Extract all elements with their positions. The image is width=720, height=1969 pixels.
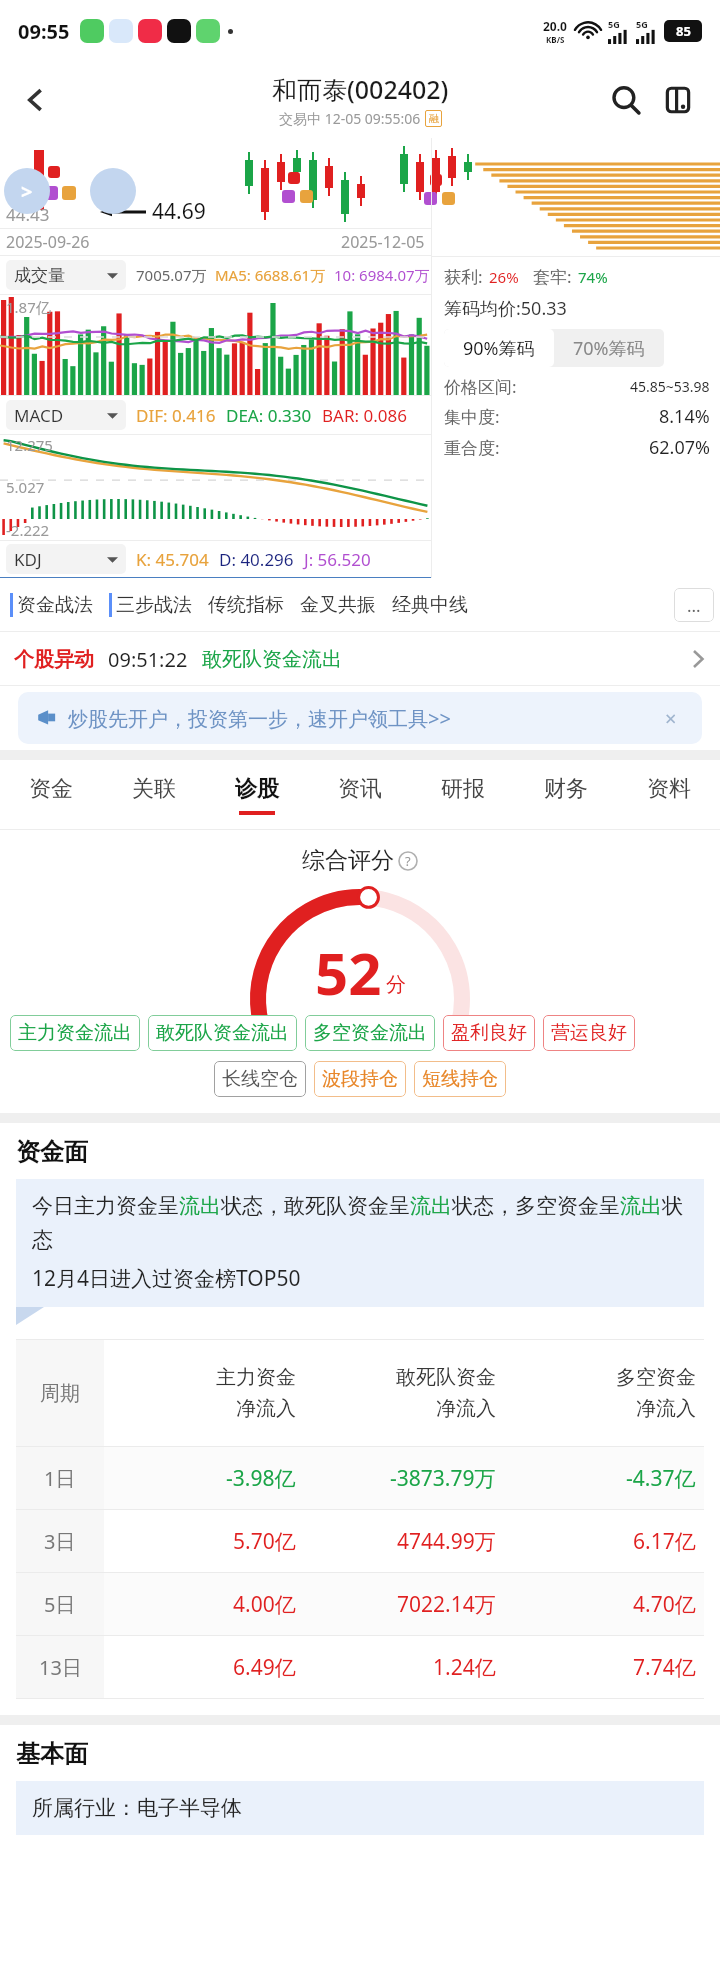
staticText: × [665, 705, 677, 731]
staticText: MA5: 6688.61万 [215, 265, 326, 285]
staticText: 5G [608, 18, 620, 30]
button[interactable]: 资料 [617, 760, 720, 830]
staticText: 20.0 [543, 18, 567, 34]
staticText: 传统指标 [208, 593, 284, 617]
staticText: ... [687, 594, 701, 617]
staticText: 44.43 [6, 203, 50, 226]
button[interactable]: 主力资金流出 [10, 1015, 140, 1051]
staticText: 和而泰(002402) [272, 72, 449, 106]
button[interactable]: Back [8, 72, 64, 128]
button[interactable]: Chart tool [90, 168, 136, 214]
button[interactable]: 关联 [102, 760, 205, 830]
staticText: 74% [578, 267, 608, 287]
staticText: 7.74亿 [633, 1653, 696, 1682]
staticText: 净流入 [236, 1396, 296, 1421]
staticText: 获利: [444, 265, 483, 288]
button[interactable]: More [652, 74, 704, 126]
staticText: 经典中线 [392, 593, 468, 617]
staticText: KDJ [14, 548, 42, 571]
button[interactable]: Next [4, 168, 50, 214]
staticText: J: 56.520 [304, 548, 371, 571]
staticText: 09:55 [18, 18, 70, 45]
staticText: 4.70亿 [633, 1590, 696, 1619]
button[interactable]: 财务 [514, 760, 617, 830]
staticText: 资讯 [338, 775, 382, 803]
staticText: 5.70亿 [233, 1527, 296, 1556]
button[interactable]: 研报 [411, 760, 514, 830]
staticText: 44.69 [152, 197, 206, 226]
staticText: 6.17亿 [633, 1527, 696, 1556]
button[interactable]: 资金 [0, 760, 102, 830]
staticText: 敢死队资金 [396, 1365, 496, 1390]
staticText: 重合度: [444, 436, 500, 459]
staticText: 诊股 [235, 775, 279, 803]
staticText: 4744.99万 [397, 1527, 496, 1556]
button[interactable]: 成交量 [6, 260, 126, 290]
button[interactable]: 短线持仓 [414, 1061, 506, 1097]
staticText: 敢死队资金流出 [156, 1021, 289, 1045]
staticText: -3873.79万 [390, 1464, 496, 1493]
button[interactable]: KDJ [6, 544, 126, 574]
staticText: 财务 [544, 775, 588, 803]
staticText: 10: 6984.07万 [334, 265, 430, 285]
button[interactable]: 多空资金流出 [305, 1015, 435, 1051]
staticText: 资金战法 [17, 593, 93, 617]
staticText: 90%筹码 [463, 336, 535, 361]
staticText: > [21, 178, 33, 205]
button[interactable]: 诊股 [205, 760, 308, 830]
staticText: 短线持仓 [422, 1067, 498, 1091]
button[interactable]: 敢死队资金流出 [148, 1015, 297, 1051]
staticText: 今日主力资金呈流出状态，敢死队资金呈流出状态，多空资金呈流出状态 [32, 1193, 688, 1254]
button[interactable]: 资讯 [308, 760, 411, 830]
staticText: 资金 [29, 775, 73, 803]
button[interactable]: 盈利良好 [443, 1015, 535, 1051]
button[interactable]: 金叉共振 [300, 585, 392, 625]
staticText: 2025-09-26 [6, 231, 90, 253]
button[interactable]: 个股异动 [0, 632, 720, 686]
button[interactable]: 90%筹码 [444, 329, 554, 367]
staticText: 13日 [39, 1654, 82, 1681]
staticText: 1.24亿 [433, 1653, 496, 1682]
button[interactable]: 三步战法 [109, 585, 208, 625]
staticText: 筹码均价:50.33 [444, 296, 567, 321]
button[interactable]: 长线空仓 [214, 1061, 306, 1097]
staticText: MACD [14, 404, 64, 427]
staticText: 62.07% [649, 435, 710, 460]
staticText: 5G [636, 18, 648, 30]
button[interactable]: MACD [6, 400, 126, 430]
button[interactable]: 70%筹码 [554, 329, 664, 367]
staticText: 净流入 [436, 1396, 496, 1421]
staticText: 长线空仓 [222, 1067, 298, 1091]
staticText: ? [405, 852, 411, 870]
staticText: 6.49亿 [233, 1653, 296, 1682]
button[interactable]: 资金战法 [10, 585, 109, 625]
staticText: 敢死队资金流出 [202, 647, 342, 672]
button[interactable]: Help [397, 850, 419, 872]
staticText: 主力资金流出 [18, 1021, 132, 1045]
button[interactable]: 经典中线 [392, 585, 484, 625]
button[interactable]: 炒股先开户，投资第一步，速开户领工具>> [18, 692, 702, 744]
staticText: 三步战法 [116, 593, 192, 617]
staticText: 45.85~53.98 [630, 377, 710, 396]
staticText: 综合评分 [302, 846, 394, 875]
button[interactable]: Close [658, 705, 684, 731]
button[interactable]: 营运良好 [543, 1015, 635, 1051]
button[interactable]: More strategies [674, 588, 714, 622]
staticText: 1.87亿 [6, 297, 51, 317]
staticText: 融 [429, 112, 439, 125]
staticText: 盈利良好 [451, 1021, 527, 1045]
staticText: 主力资金 [216, 1365, 296, 1390]
staticText: 09:51:22 [108, 646, 188, 673]
staticText: 5日 [44, 1591, 76, 1618]
staticText: 7022.14万 [397, 1590, 496, 1619]
button[interactable]: 波段持仓 [314, 1061, 406, 1097]
staticText: 12.275 [6, 435, 53, 455]
staticText: 研报 [441, 775, 485, 803]
staticText: 2025-12-05 [341, 231, 425, 253]
staticText: K: 45.704 [136, 548, 209, 571]
staticText: -3.98亿 [226, 1464, 296, 1493]
staticText: 多空资金 [616, 1365, 696, 1390]
button[interactable]: Search [600, 74, 652, 126]
button[interactable]: 传统指标 [208, 585, 300, 625]
staticText: BAR: 0.086 [322, 404, 407, 427]
